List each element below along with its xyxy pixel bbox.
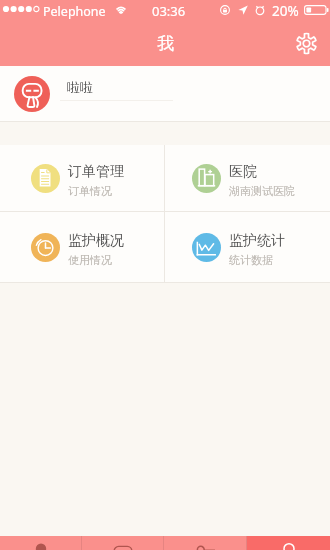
button[interactable]: Device (164, 536, 247, 550)
staticText: 统计数据 (229, 253, 273, 267)
staticText: 监护概况 (68, 232, 124, 250)
button[interactable]: Home (0, 536, 82, 550)
staticText: 20% (272, 2, 299, 20)
button[interactable]: Settings (289, 26, 323, 60)
button[interactable]: Messages (82, 536, 164, 550)
button[interactable]: 啦啦 (0, 66, 330, 122)
staticText: 啦啦 (67, 79, 93, 95)
button[interactable]: 监护概况 (0, 212, 164, 282)
button[interactable]: 监护统计 (165, 212, 330, 282)
staticText: 03:36 (152, 2, 186, 20)
staticText: Pelephone (43, 3, 106, 20)
button[interactable]: Me (247, 536, 330, 550)
staticText: 我 (157, 33, 174, 54)
button[interactable]: 医院 (165, 145, 330, 211)
staticText: 湖南测试医院 (229, 184, 295, 198)
staticText: 医院 (229, 163, 257, 181)
staticText: 监护统计 (229, 232, 285, 250)
button[interactable]: 订单管理 (0, 145, 164, 211)
staticText: 使用情况 (68, 253, 112, 267)
staticText: 订单情况 (68, 184, 112, 198)
staticText: 订单管理 (68, 163, 124, 181)
